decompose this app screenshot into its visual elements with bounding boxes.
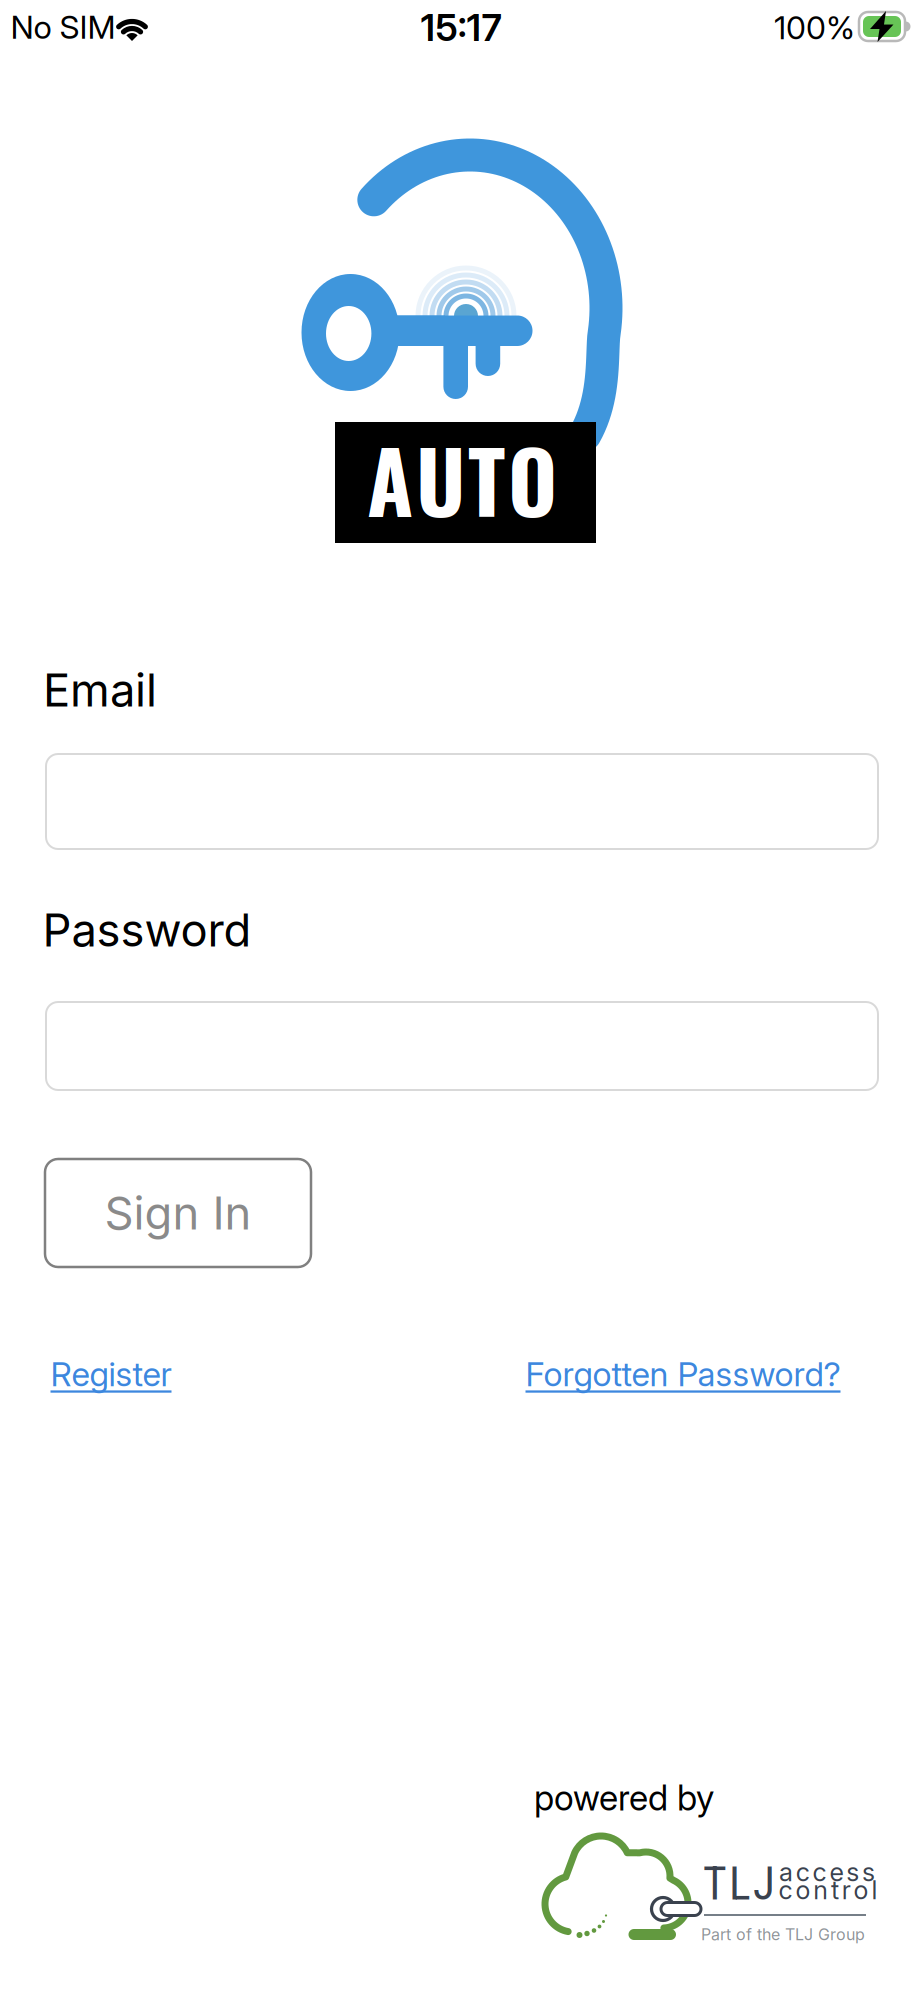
- staticText: access: [779, 1857, 875, 1887]
- staticText: 15:17: [420, 5, 501, 49]
- staticText: No SIM: [10, 8, 115, 46]
- button[interactable]: Register: [50, 1354, 171, 1394]
- staticText: control: [779, 1875, 877, 1905]
- staticText: Register: [50, 1354, 171, 1394]
- staticText: Email: [43, 663, 157, 717]
- button[interactable]: Password: [46, 1002, 878, 1090]
- button[interactable]: Email: [46, 754, 878, 849]
- staticText: powered by: [534, 1778, 714, 1818]
- button[interactable]: Forgotten Password?: [525, 1354, 840, 1394]
- staticText: AUTO: [367, 417, 557, 541]
- staticText: Password: [42, 903, 251, 957]
- staticText: 100%: [774, 9, 855, 46]
- staticText: Forgotten Password?: [525, 1354, 840, 1394]
- staticText: TLJ: [703, 1857, 775, 1910]
- button[interactable]: Sign In: [45, 1159, 311, 1267]
- staticText: Part of the TLJ Group: [701, 1925, 865, 1944]
- staticText: Sign In: [104, 1186, 251, 1240]
